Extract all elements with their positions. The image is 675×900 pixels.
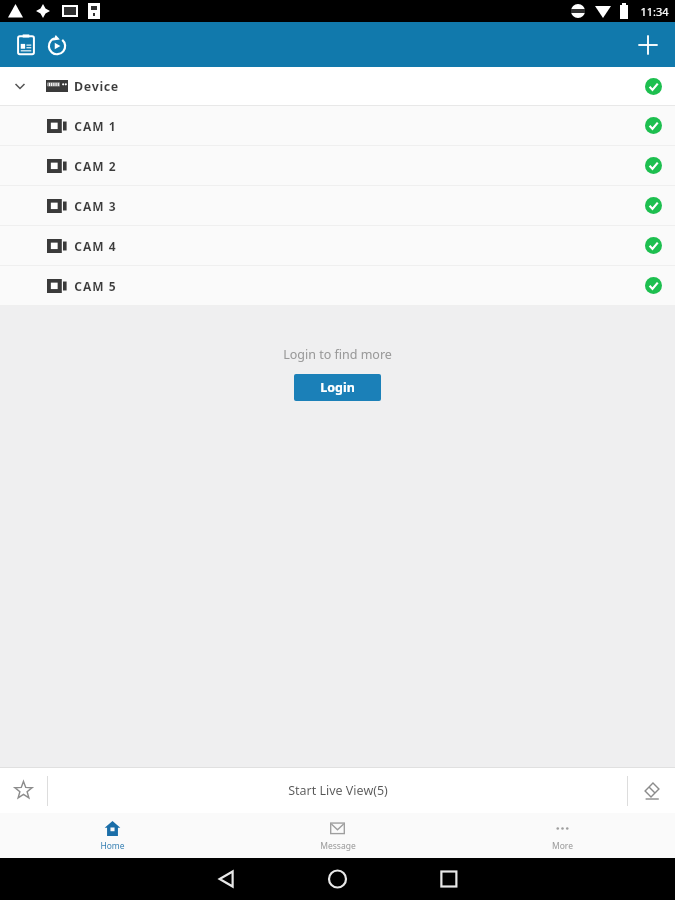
staticText: CAM 4 — [74, 238, 117, 254]
staticText: Message — [320, 840, 356, 852]
button[interactable]: Favorites — [0, 768, 47, 813]
button[interactable]: Home — [0, 813, 225, 858]
staticText: 11:34 — [640, 4, 669, 19]
staticText: Device — [74, 78, 119, 95]
button[interactable]: Add device — [626, 23, 670, 67]
button[interactable]: CAM 4 — [0, 226, 675, 265]
staticText: Home — [100, 840, 125, 852]
staticText: Login — [320, 379, 355, 396]
staticText: More — [552, 840, 573, 852]
button[interactable]: CAM 1 — [0, 106, 675, 145]
staticText: CAM 2 — [74, 158, 117, 174]
button[interactable]: Device list — [5, 24, 47, 66]
staticText: Login to find more — [283, 346, 392, 363]
button[interactable]: CAM 3 — [0, 186, 675, 225]
button[interactable]: Login — [294, 374, 381, 401]
button[interactable]: CAM 5 — [0, 266, 675, 305]
staticText: CAM 3 — [74, 198, 117, 214]
button[interactable]: Playback — [36, 24, 78, 66]
button[interactable]: Clear — [628, 768, 675, 813]
button[interactable]: Device — [0, 67, 675, 105]
staticText: CAM 1 — [74, 118, 117, 134]
button[interactable]: More — [450, 813, 675, 858]
staticText: Start Live View(5) — [288, 782, 388, 799]
button[interactable]: CAM 2 — [0, 146, 675, 185]
button[interactable]: Message — [225, 813, 450, 858]
button[interactable]: Start Live View(5) — [48, 768, 627, 813]
staticText: CAM 5 — [74, 278, 117, 294]
